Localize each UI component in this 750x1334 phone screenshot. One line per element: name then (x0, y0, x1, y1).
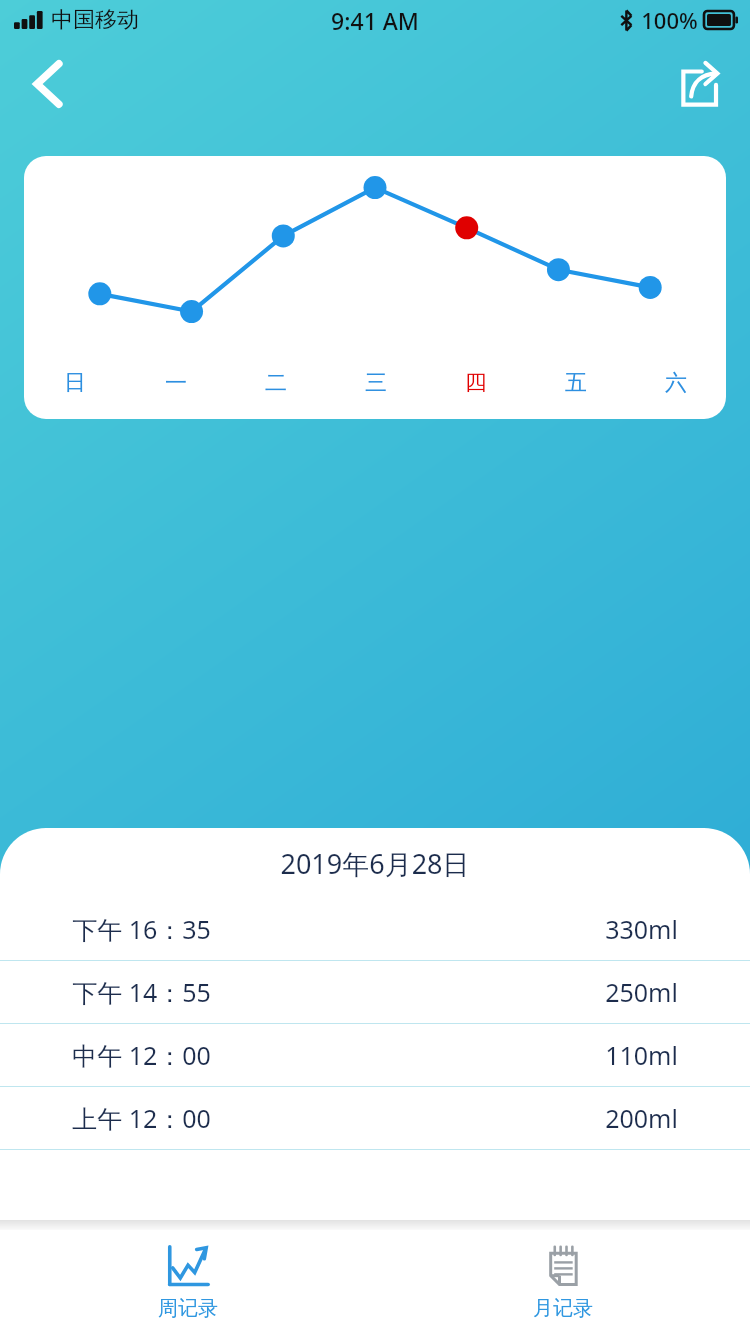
button[interactable]: 中午 12：00 (0, 1024, 750, 1086)
staticText: 200ml (605, 1101, 678, 1135)
staticText: 一 (165, 369, 187, 397)
staticText: 中国移动 (51, 6, 139, 34)
button[interactable]: Share (668, 53, 730, 115)
staticText: 六 (665, 369, 687, 397)
staticText: 二 (265, 369, 287, 397)
staticText: 五 (565, 369, 587, 397)
button[interactable]: Back (18, 54, 78, 114)
staticText: 日 (64, 369, 86, 397)
button[interactable]: 周记录 (0, 1230, 375, 1334)
staticText: 250ml (605, 975, 678, 1009)
staticText: 三 (365, 369, 387, 397)
button[interactable]: 月记录 (375, 1230, 750, 1334)
staticText: 100% (641, 5, 698, 35)
staticText: 中午 12：00 (72, 1038, 211, 1072)
staticText: 周记录 (158, 1296, 218, 1321)
staticText: 下午 16：35 (72, 912, 211, 946)
staticText: 2019年6月28日 (280, 845, 470, 882)
staticText: 330ml (605, 912, 678, 946)
staticText: 月记录 (533, 1296, 593, 1321)
staticText: 四 (465, 369, 487, 397)
staticText: 9:41 AM (331, 5, 419, 36)
button[interactable]: 下午 16：35 (0, 898, 750, 960)
staticText: 上午 12：00 (72, 1101, 211, 1135)
button[interactable]: 上午 12：00 (0, 1087, 750, 1149)
staticText: 下午 14：55 (72, 975, 211, 1009)
staticText: 110ml (605, 1038, 678, 1072)
button[interactable]: 下午 14：55 (0, 961, 750, 1023)
